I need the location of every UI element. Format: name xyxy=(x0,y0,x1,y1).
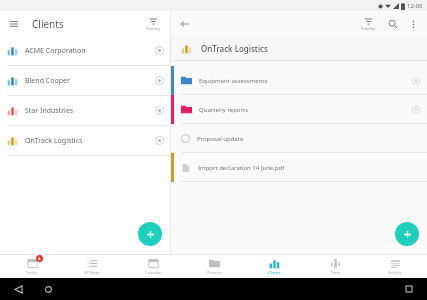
staticText: OnTrack Logistics xyxy=(25,136,155,146)
staticText: Projects xyxy=(207,270,222,275)
staticText: Proposal update xyxy=(197,135,420,143)
button[interactable]: All News xyxy=(63,255,121,278)
staticText: Activity xyxy=(388,270,402,275)
button[interactable]: Blend Cooper xyxy=(0,66,170,96)
button[interactable]: Recent apps xyxy=(401,281,417,297)
button[interactable]: Proposal update xyxy=(171,124,427,153)
staticText: Priority xyxy=(146,26,160,31)
button[interactable]: ACME Corporation xyxy=(0,36,170,66)
button[interactable]: Clients xyxy=(245,255,303,278)
staticText: Star Industries xyxy=(25,106,155,116)
staticText: 12:00 xyxy=(407,2,423,10)
button[interactable]: Team xyxy=(306,255,364,278)
button[interactable]: Search xyxy=(386,17,400,31)
staticText: Today xyxy=(26,270,38,275)
button[interactable]: Equipment assessments xyxy=(171,66,427,95)
button[interactable]: Back xyxy=(10,281,26,297)
staticText: Clients xyxy=(268,270,281,275)
button[interactable]: Open navigation menu xyxy=(7,17,21,31)
staticText: Priority xyxy=(361,26,375,31)
staticText: 4 xyxy=(38,256,41,261)
button[interactable]: Home xyxy=(40,281,56,297)
button[interactable]: Back xyxy=(178,17,192,31)
staticText: Import declaration 14 June.pdf xyxy=(198,164,420,172)
button[interactable]: OnTrack Logistics xyxy=(0,126,170,156)
button[interactable]: Quarterly reports xyxy=(171,95,427,124)
button[interactable]: Add client xyxy=(138,222,162,246)
button[interactable]: Calendar xyxy=(124,255,182,278)
button[interactable]: OnTrack Logistics xyxy=(181,36,427,60)
staticText: OnTrack Logistics xyxy=(201,43,268,54)
button[interactable]: Add item xyxy=(395,222,419,246)
button[interactable]: Projects xyxy=(185,255,243,278)
staticText: Blend Cooper xyxy=(25,76,155,86)
button[interactable]: Filter by priority xyxy=(358,15,378,33)
button[interactable]: More options xyxy=(406,17,420,31)
staticText: Equipment assessments xyxy=(199,77,412,85)
button[interactable]: Activity xyxy=(366,255,424,278)
button[interactable]: Star Industries xyxy=(0,96,170,126)
button[interactable]: Import declaration 14 June.pdf xyxy=(171,153,427,182)
staticText: Clients xyxy=(32,17,143,31)
staticText: Quarterly reports xyxy=(199,106,412,114)
button[interactable]: Filter by priority xyxy=(143,15,163,33)
staticText: Calendar xyxy=(145,270,162,275)
staticText: ACME Corporation xyxy=(25,46,155,56)
staticText: All News xyxy=(84,270,100,275)
button[interactable]: 4 xyxy=(3,255,61,278)
staticText: Team xyxy=(330,270,341,275)
